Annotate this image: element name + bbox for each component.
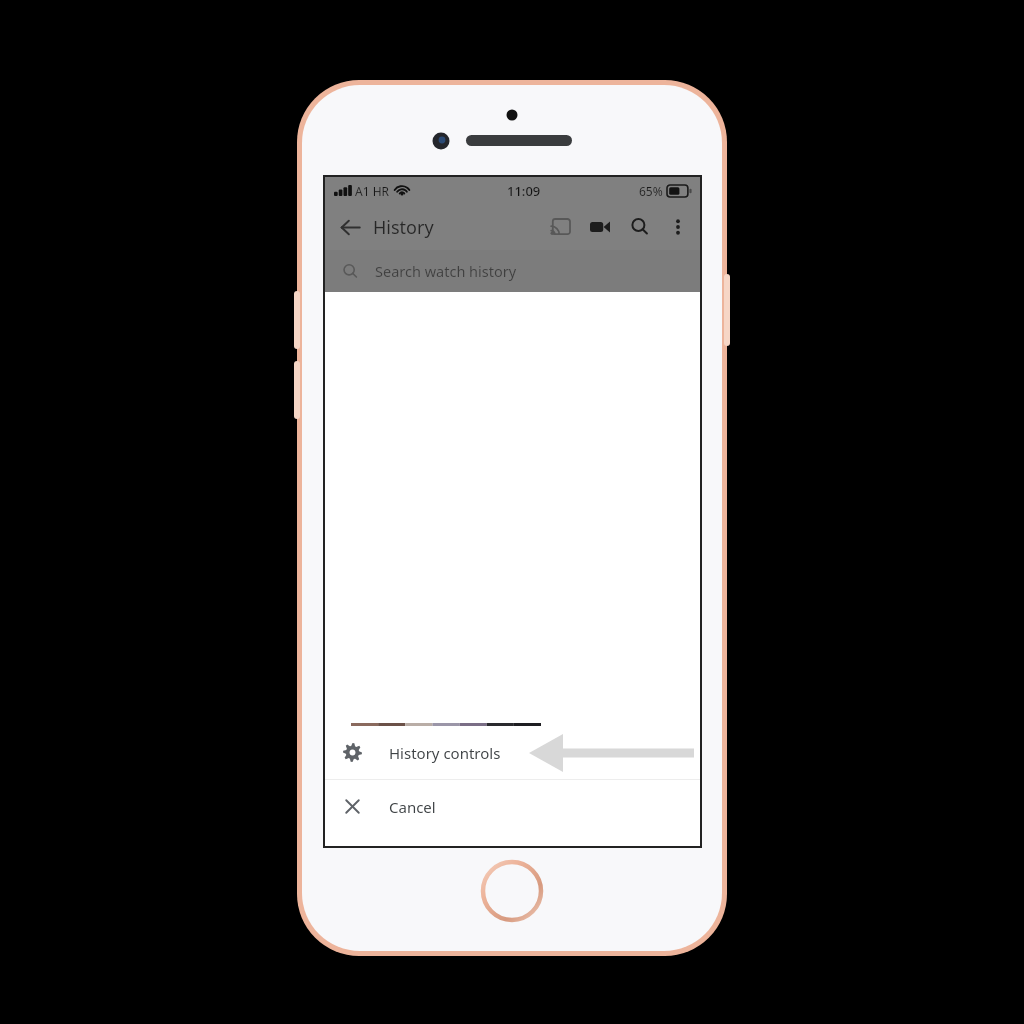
button[interactable]: More options	[660, 209, 696, 245]
staticText: A1 HR	[355, 183, 390, 199]
button[interactable]: Home	[478, 857, 546, 925]
staticText: History controls	[389, 743, 501, 763]
button[interactable]: Cancel	[325, 780, 700, 833]
staticText: 65%	[639, 183, 663, 199]
staticText: History	[373, 215, 434, 240]
button[interactable]: Create video	[580, 207, 620, 247]
button[interactable]: Search	[620, 207, 660, 247]
button[interactable]: Cast	[540, 207, 580, 247]
button[interactable]: Search watch history	[325, 250, 700, 292]
staticText: Cancel	[389, 797, 436, 817]
staticText: Search watch history	[375, 261, 517, 281]
button[interactable]: Back	[331, 208, 369, 246]
staticText: 11:09	[507, 182, 541, 200]
button[interactable]: History controls	[325, 726, 700, 779]
